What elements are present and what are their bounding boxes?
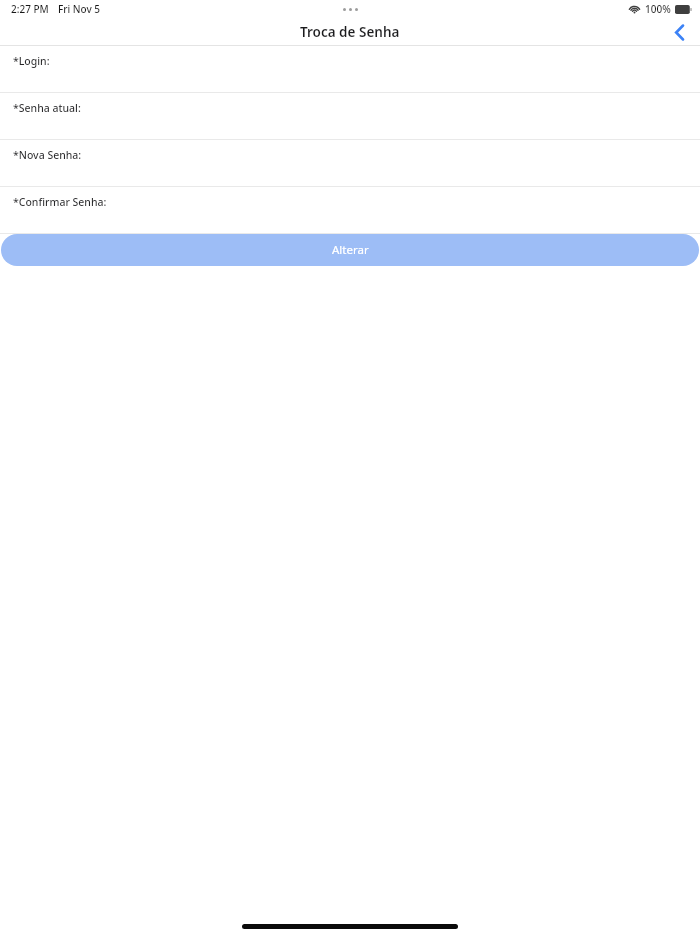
- button[interactable]: *Login:: [0, 46, 700, 93]
- staticText: Alterar: [332, 242, 369, 258]
- staticText: *Login:: [13, 54, 50, 68]
- button[interactable]: *Nova Senha:: [0, 140, 700, 187]
- staticText: Fri Nov 5: [58, 2, 101, 16]
- staticText: 2:27 PM: [11, 2, 49, 16]
- staticText: *Nova Senha:: [13, 148, 82, 162]
- button[interactable]: *Senha atual:: [0, 93, 700, 140]
- staticText: *Senha atual:: [13, 101, 81, 115]
- staticText: Troca de Senha: [300, 23, 400, 41]
- button[interactable]: *Confirmar Senha:: [0, 187, 700, 234]
- button[interactable]: Alterar: [1, 234, 699, 266]
- staticText: *Confirmar Senha:: [13, 195, 107, 209]
- staticText: 100%: [645, 2, 671, 16]
- button[interactable]: Back: [658, 18, 700, 46]
